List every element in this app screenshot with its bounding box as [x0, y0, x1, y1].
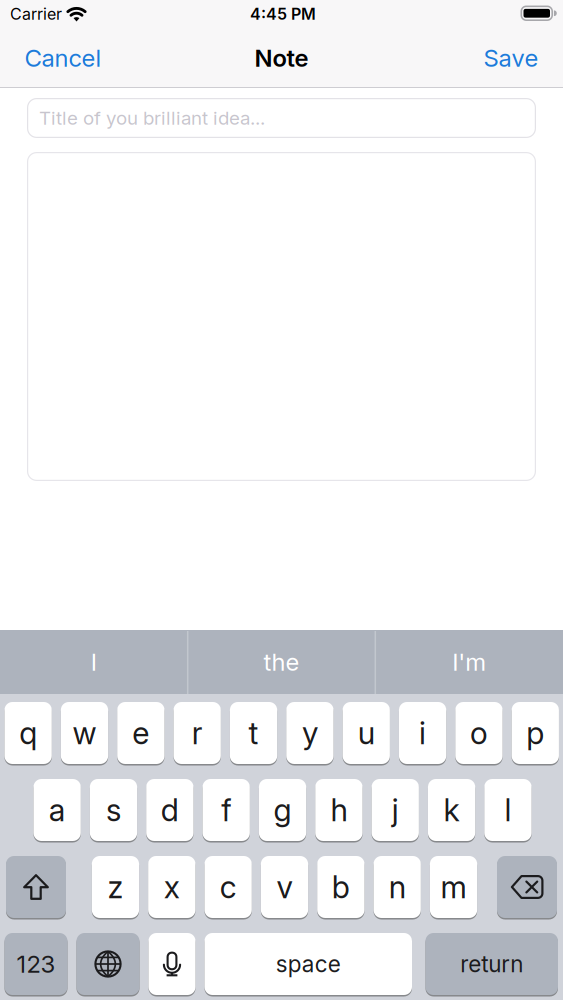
staticText: l — [504, 792, 511, 828]
staticText: g — [273, 792, 291, 828]
staticText: Note — [254, 44, 308, 72]
button[interactable]: q — [4, 701, 52, 765]
button[interactable]: x — [148, 855, 195, 919]
button[interactable]: o — [455, 701, 503, 765]
staticText: r — [192, 715, 203, 751]
button[interactable]: s — [90, 778, 137, 842]
button[interactable]: c — [204, 855, 252, 919]
staticText: h — [330, 792, 347, 828]
staticText: p — [526, 715, 544, 751]
staticText: z — [107, 869, 123, 905]
button[interactable]: r — [174, 701, 221, 765]
button[interactable]: Dictate — [148, 932, 195, 996]
button[interactable]: e — [117, 701, 164, 765]
button[interactable]: b — [317, 855, 364, 919]
staticText: Title of you brilliant idea... — [39, 107, 265, 129]
button[interactable]: I — [4, 630, 184, 694]
staticText: s — [106, 792, 121, 828]
button[interactable]: j — [372, 778, 419, 842]
button[interactable]: n — [374, 855, 421, 919]
button[interactable]: t — [230, 701, 277, 765]
staticText: d — [161, 792, 179, 828]
staticText: space — [276, 951, 341, 977]
button[interactable]: w — [61, 701, 108, 765]
staticText: c — [220, 869, 237, 905]
button[interactable]: the — [191, 630, 371, 694]
staticText: b — [332, 869, 350, 905]
button[interactable]: Next keyboard — [76, 932, 139, 996]
button[interactable]: m — [430, 855, 477, 919]
staticText: t — [249, 715, 259, 751]
staticText: u — [358, 715, 375, 751]
staticText: a — [49, 792, 66, 828]
staticText: 4:45 PM — [250, 5, 316, 23]
staticText: e — [132, 715, 149, 751]
staticText: v — [276, 869, 292, 905]
button[interactable]: z — [92, 855, 139, 919]
staticText: Cancel — [24, 44, 101, 72]
button[interactable]: return — [425, 932, 558, 996]
button[interactable]: Shift — [6, 855, 66, 919]
button[interactable]: a — [33, 778, 81, 842]
staticText: return — [460, 951, 523, 977]
staticText: I — [91, 648, 97, 676]
staticText: m — [441, 869, 467, 905]
button[interactable]: 123 — [4, 932, 67, 996]
button[interactable]: d — [146, 778, 193, 842]
button[interactable]: space — [204, 932, 412, 996]
staticText: i — [419, 715, 426, 751]
button[interactable]: k — [428, 778, 475, 842]
button[interactable]: Delete — [497, 855, 557, 919]
button[interactable]: i — [399, 701, 446, 765]
button[interactable]: f — [203, 778, 250, 842]
staticText: 123 — [16, 950, 55, 978]
button[interactable]: g — [259, 778, 306, 842]
button[interactable]: y — [286, 701, 333, 765]
staticText: j — [392, 792, 399, 828]
button[interactable]: u — [343, 701, 390, 765]
staticText: o — [470, 715, 488, 751]
staticText: Save — [483, 44, 538, 72]
staticText: I'm — [452, 648, 486, 676]
staticText: w — [72, 715, 96, 751]
staticText: n — [389, 869, 406, 905]
staticText: y — [302, 715, 318, 751]
button[interactable]: Cancel — [16, 38, 109, 78]
button[interactable]: h — [315, 778, 362, 842]
staticText: x — [164, 869, 180, 905]
button[interactable]: p — [512, 701, 559, 765]
staticText: q — [19, 715, 37, 751]
staticText: Carrier — [10, 5, 62, 23]
staticText: k — [444, 792, 460, 828]
button[interactable]: l — [484, 778, 532, 842]
staticText: the — [263, 648, 299, 676]
button[interactable]: Save — [475, 38, 546, 78]
button[interactable]: v — [261, 855, 308, 919]
button[interactable]: I'm — [379, 630, 559, 694]
staticText: f — [221, 792, 231, 828]
button[interactable]: Title of you brilliant idea... — [27, 98, 536, 138]
